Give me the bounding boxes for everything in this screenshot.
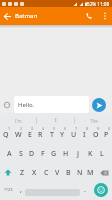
button[interactable]: L xyxy=(96,144,108,163)
staticText: L xyxy=(100,149,104,159)
staticText: U xyxy=(71,130,77,140)
button[interactable]: I xyxy=(79,125,90,144)
staticText: . xyxy=(84,185,86,195)
staticText: Batman xyxy=(15,12,38,20)
staticText: 8 xyxy=(86,126,89,131)
button[interactable]: P xyxy=(101,125,112,144)
button[interactable] xyxy=(3,101,11,109)
staticText: K xyxy=(88,149,93,159)
button[interactable] xyxy=(0,163,16,182)
button[interactable]: E xyxy=(24,125,35,144)
button[interactable]: J xyxy=(72,144,84,163)
staticText: I'm xyxy=(15,118,22,124)
staticText: V xyxy=(55,168,60,178)
button[interactable]: F xyxy=(37,144,48,163)
staticText: Hello. xyxy=(18,101,35,109)
staticText: C xyxy=(44,168,49,178)
staticText: I xyxy=(55,117,57,124)
button[interactable]: The xyxy=(75,118,112,124)
staticText: 3 xyxy=(31,126,34,131)
button[interactable]: S xyxy=(15,144,26,163)
button[interactable]: C xyxy=(40,163,52,182)
staticText: O xyxy=(93,130,99,140)
staticText: 5 xyxy=(53,126,56,131)
staticText: M xyxy=(87,168,94,178)
button[interactable]: R xyxy=(35,125,46,144)
staticText: 2 xyxy=(20,126,23,131)
staticText: P xyxy=(104,130,109,140)
button[interactable]: X xyxy=(28,163,40,182)
staticText: 7 xyxy=(75,126,78,131)
button[interactable]: Z xyxy=(16,163,28,182)
button[interactable] xyxy=(96,163,112,182)
staticText: G xyxy=(51,149,57,159)
staticText: ?123 xyxy=(4,187,13,192)
button[interactable]: B xyxy=(63,163,74,182)
staticText: Y xyxy=(60,130,65,140)
staticText: F xyxy=(41,149,45,159)
staticText: W xyxy=(15,130,22,140)
button[interactable] xyxy=(104,12,106,20)
button[interactable]: Y xyxy=(57,125,68,144)
button[interactable]: A xyxy=(4,144,15,163)
button[interactable] xyxy=(4,13,11,20)
staticText: S xyxy=(19,149,23,159)
button[interactable]: Q xyxy=(0,125,12,144)
staticText: N xyxy=(77,168,83,178)
button[interactable]: K xyxy=(84,144,96,163)
button[interactable]: G xyxy=(48,144,60,163)
button[interactable]: . xyxy=(80,182,90,197)
button[interactable]: N xyxy=(74,163,85,182)
staticText: D xyxy=(29,149,35,159)
staticText: 1 xyxy=(8,126,11,131)
button[interactable]: O xyxy=(90,125,101,144)
staticText: X xyxy=(32,168,37,178)
button[interactable]: ?123 xyxy=(0,182,16,197)
button[interactable]: T xyxy=(46,125,57,144)
staticText: 6 xyxy=(64,126,67,131)
staticText: 4 xyxy=(42,126,45,131)
button[interactable]: I xyxy=(37,117,74,124)
button[interactable]: D xyxy=(26,144,37,163)
staticText: 9 xyxy=(97,126,100,131)
staticText: A xyxy=(7,149,12,159)
staticText: T xyxy=(50,130,54,140)
button[interactable]: , xyxy=(16,182,25,197)
staticText: 0 xyxy=(108,126,111,131)
staticText: B xyxy=(66,168,71,178)
button[interactable]: H xyxy=(60,144,72,163)
staticText: Q xyxy=(3,130,9,140)
staticText: The xyxy=(90,118,98,124)
staticText: H xyxy=(63,149,69,159)
button[interactable] xyxy=(92,98,106,112)
button[interactable]: M xyxy=(85,163,96,182)
staticText: R xyxy=(38,130,43,140)
button[interactable]: W xyxy=(12,125,24,144)
button[interactable]: Hello. xyxy=(14,96,89,113)
button[interactable] xyxy=(90,182,112,197)
button[interactable] xyxy=(86,13,92,19)
staticText: 52% 11:08 xyxy=(87,1,110,7)
button[interactable]: V xyxy=(52,163,63,182)
staticText: J xyxy=(77,149,80,159)
staticText: Z xyxy=(20,168,25,178)
button[interactable]: I'm xyxy=(0,118,36,124)
button[interactable]: U xyxy=(68,125,79,144)
staticText: E xyxy=(28,130,32,140)
staticText: , xyxy=(20,185,22,195)
staticText: I xyxy=(83,130,86,140)
